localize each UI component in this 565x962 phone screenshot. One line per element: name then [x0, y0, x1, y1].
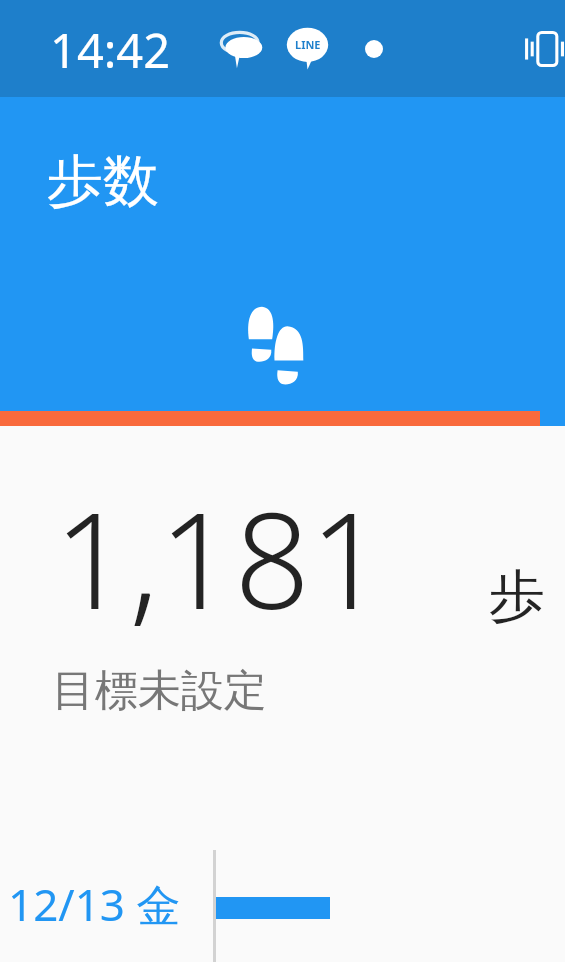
staticText: 歩数: [47, 146, 159, 217]
staticText: 歩: [489, 561, 545, 632]
button[interactable]: 12/13 金: [0, 844, 565, 962]
button[interactable]: 歩数: [0, 97, 565, 411]
other: Footprints: [246, 305, 304, 387]
staticText: LINE: [295, 37, 321, 52]
button[interactable]: 1,181: [0, 426, 565, 718]
staticText: 12/13 金: [8, 874, 181, 934]
staticText: 目標未設定: [52, 664, 267, 718]
staticText: 1,181: [54, 468, 386, 648]
staticText: 14:42: [50, 18, 171, 82]
